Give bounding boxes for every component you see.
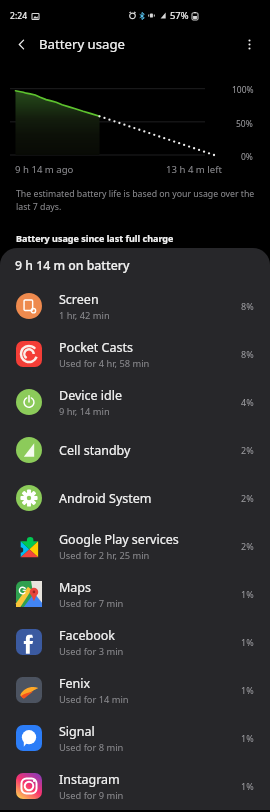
staticText: 9 h 14 m ago xyxy=(15,163,74,176)
button[interactable]: Facebook xyxy=(0,618,270,666)
staticText: Facebook xyxy=(59,627,116,644)
staticText: Used for 3 min xyxy=(59,645,124,658)
staticText: 1% xyxy=(241,636,254,648)
button[interactable]: Android System xyxy=(0,474,270,522)
staticText: Battery usage xyxy=(39,35,125,53)
staticText: Used for 2 hr, 25 min xyxy=(59,549,150,562)
staticText: 9 h 14 m on battery xyxy=(15,257,130,274)
staticText: Android System xyxy=(59,490,152,507)
staticText: Instagram xyxy=(59,771,120,788)
staticText: Screen xyxy=(59,291,99,308)
staticText: Used for 8 min xyxy=(59,741,124,754)
button[interactable]: Pocket Casts xyxy=(0,330,270,378)
staticText: 100% xyxy=(232,84,254,96)
staticText: Signal xyxy=(59,723,95,740)
staticText: 1% xyxy=(241,732,254,744)
staticText: 1% xyxy=(241,780,254,792)
button[interactable]: Device idle xyxy=(0,378,270,426)
staticText: Used for 7 min xyxy=(59,597,124,610)
button[interactable]: Navigate up xyxy=(4,27,38,61)
button[interactable]: Google Play services xyxy=(0,522,270,570)
staticText: 13 h 4 m left xyxy=(166,163,222,176)
staticText: Cell standby xyxy=(59,442,131,459)
staticText: Maps xyxy=(59,579,92,596)
staticText: Pocket Casts xyxy=(59,339,134,356)
button[interactable]: More options xyxy=(232,27,266,61)
staticText: 0% xyxy=(241,151,253,163)
staticText: Device idle xyxy=(59,387,122,404)
staticText: 50% xyxy=(236,118,253,130)
staticText: Used for 4 hr, 58 min xyxy=(59,357,150,370)
staticText: 9 hr, 14 min xyxy=(59,405,110,418)
staticText: Battery usage since last full charge xyxy=(16,232,174,244)
button[interactable]: Screen xyxy=(0,282,270,330)
staticText: 1 hr, 42 min xyxy=(59,309,110,322)
staticText: Used for 14 min xyxy=(59,693,129,706)
button[interactable]: Cell standby xyxy=(0,426,270,474)
button[interactable]: Maps xyxy=(0,570,270,618)
button[interactable]: Instagram xyxy=(0,762,270,810)
staticText: 1% xyxy=(241,684,254,696)
staticText: 57% xyxy=(170,9,189,22)
staticText: 2:24 xyxy=(10,10,28,22)
staticText: 2% xyxy=(241,444,254,456)
button[interactable]: Fenix xyxy=(0,666,270,714)
staticText: The estimated battery life is based on y… xyxy=(16,188,258,213)
staticText: 8% xyxy=(241,348,254,360)
staticText: 4% xyxy=(241,396,254,408)
staticText: Google Play services xyxy=(59,531,179,548)
staticText: 8% xyxy=(241,300,254,312)
staticText: Fenix xyxy=(59,675,91,692)
staticText: 2% xyxy=(241,540,254,552)
staticText: 2% xyxy=(241,492,254,504)
staticText: Used for 9 min xyxy=(59,789,124,802)
staticText: 1% xyxy=(241,588,254,600)
button[interactable]: Signal xyxy=(0,714,270,762)
